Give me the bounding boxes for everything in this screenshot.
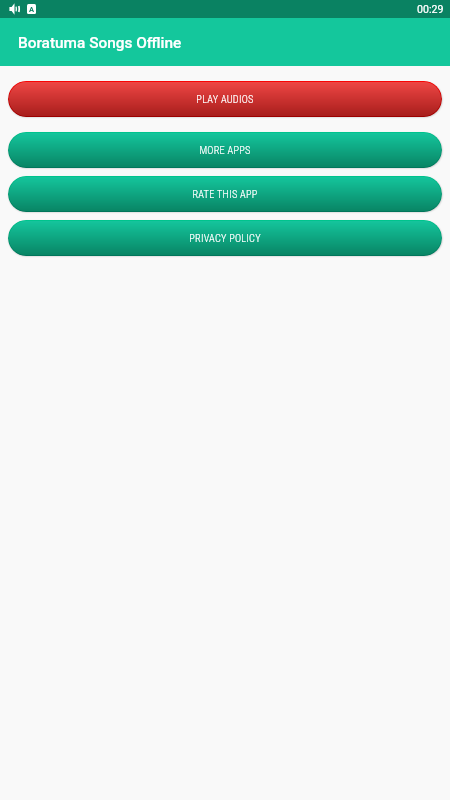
staticText: PRIVACY POLICY — [189, 232, 261, 244]
other: Volume — [9, 3, 19, 15]
staticText: A — [29, 5, 35, 14]
other: Accessibility — [27, 4, 36, 14]
button[interactable]: PLAY AUDIOS — [8, 81, 442, 117]
button[interactable]: RATE THIS APP — [8, 176, 442, 212]
staticText: 00:29 — [417, 3, 444, 15]
staticText: MORE APPS — [199, 144, 251, 156]
button[interactable]: MORE APPS — [8, 132, 442, 168]
staticText: Boratuma Songs Offline — [18, 34, 182, 52]
staticText: RATE THIS APP — [192, 188, 258, 200]
button[interactable]: PRIVACY POLICY — [8, 220, 442, 256]
staticText: PLAY AUDIOS — [196, 93, 254, 105]
